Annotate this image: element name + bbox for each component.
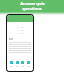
staticText: Answer quiz (20, 1, 45, 6)
staticText: questions (22, 6, 42, 11)
